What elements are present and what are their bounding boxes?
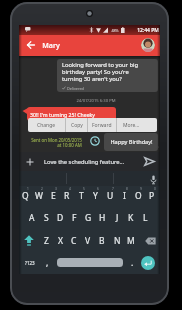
staticText: Copy — [71, 122, 83, 129]
staticText: 1 — [27, 187, 29, 191]
staticText: Forward — [92, 122, 112, 129]
staticText: L — [143, 212, 148, 224]
button[interactable] — [27, 107, 116, 121]
staticText: 4 — [69, 187, 71, 191]
button[interactable]: . — [125, 256, 139, 269]
button[interactable]: , — [40, 256, 54, 269]
button[interactable] — [146, 172, 160, 187]
button[interactable]: C — [67, 234, 81, 247]
button[interactable]: N — [110, 234, 124, 247]
staticText: K — [128, 212, 134, 224]
staticText: F — [72, 212, 77, 224]
button[interactable] — [24, 38, 38, 52]
staticText: 9 — [140, 187, 142, 191]
staticText: S — [44, 212, 49, 224]
staticText: U — [107, 190, 114, 202]
button[interactable]: Y — [88, 189, 102, 202]
staticText: C — [71, 235, 77, 247]
staticText: Q — [22, 190, 29, 202]
staticText: at 10:00 AM — [57, 142, 82, 148]
button[interactable]: H — [95, 211, 109, 224]
staticText: Delivered — [67, 86, 84, 91]
button[interactable] — [23, 155, 37, 169]
staticText: X — [58, 235, 63, 247]
staticText: 2 — [41, 187, 43, 191]
button[interactable] — [141, 154, 158, 169]
staticText: 12:44 PM — [137, 27, 159, 34]
staticText: E — [51, 190, 56, 202]
button[interactable] — [143, 234, 158, 247]
button[interactable]: L — [138, 211, 152, 224]
staticText: B — [99, 235, 105, 247]
button[interactable]: Love the scheduling feature... — [44, 152, 139, 171]
staticText: Change — [37, 122, 56, 129]
button[interactable]: M — [124, 234, 138, 247]
button[interactable]: R — [60, 189, 74, 202]
button[interactable]: X — [53, 234, 67, 247]
button[interactable] — [104, 133, 158, 151]
button[interactable]: J — [110, 211, 124, 224]
button[interactable]: Z — [39, 234, 53, 247]
button[interactable] — [141, 256, 155, 270]
button[interactable] — [141, 38, 155, 52]
staticText: 5 — [83, 187, 85, 191]
button[interactable]: Forward — [87, 118, 116, 132]
staticText: 48% — [111, 28, 119, 33]
button[interactable]: E — [46, 189, 60, 202]
button[interactable]: D — [53, 211, 67, 224]
staticText: 30!! I'm turning 25! Cheeky — [30, 111, 95, 118]
button[interactable]: S — [39, 211, 53, 224]
staticText: 6 — [97, 187, 99, 191]
button[interactable]: B — [95, 234, 109, 247]
staticText: W — [35, 190, 43, 202]
staticText: ?123 — [25, 260, 35, 266]
staticText: V — [85, 235, 91, 247]
staticText: T — [79, 190, 84, 202]
staticText: M — [127, 235, 135, 247]
button[interactable]: Copy — [65, 118, 88, 132]
staticText: Love the scheduling feature... — [44, 158, 125, 166]
staticText: 7 — [112, 187, 114, 191]
staticText: N — [114, 235, 121, 247]
button[interactable]: F — [67, 211, 81, 224]
staticText: D — [57, 212, 64, 224]
button[interactable]: K — [124, 211, 138, 224]
staticText: Z — [44, 235, 49, 247]
button[interactable]: I — [117, 189, 131, 202]
staticText: More... — [123, 122, 140, 129]
staticText: Happy Birthday! — [110, 138, 153, 146]
staticText: H — [99, 212, 106, 224]
staticText: 0 — [154, 187, 156, 191]
button[interactable]: U — [103, 189, 117, 202]
button[interactable]: O — [131, 189, 145, 202]
staticText: Mary — [42, 40, 60, 50]
button[interactable] — [57, 258, 123, 267]
button[interactable]: T — [74, 189, 88, 202]
staticText: Y — [93, 190, 98, 202]
button[interactable]: V — [81, 234, 95, 247]
staticText: J — [116, 212, 119, 224]
button[interactable]: G — [81, 211, 95, 224]
button[interactable]: ?123 — [21, 256, 38, 269]
staticText: O — [135, 190, 142, 202]
staticText: . — [131, 257, 134, 269]
staticText: Sent on Mon 20/05/2015 — [31, 137, 82, 143]
button[interactable]: More... — [116, 118, 147, 132]
staticText: 3 — [55, 187, 57, 191]
staticText: A — [29, 212, 35, 224]
button[interactable]: W — [32, 189, 46, 202]
button[interactable]: P — [145, 189, 159, 202]
staticText: P — [149, 190, 155, 202]
button[interactable] — [21, 234, 37, 247]
button[interactable] — [57, 59, 158, 92]
staticText: 8 — [126, 187, 128, 191]
staticText: R — [64, 190, 70, 202]
staticText: 24/07/2015 6:30 PM — [76, 98, 116, 104]
staticText: I — [123, 190, 126, 202]
staticText: , — [46, 257, 49, 269]
button[interactable]: A — [25, 211, 39, 224]
button[interactable]: Change — [28, 118, 65, 132]
staticText: Looking forward to your big birthday par… — [62, 61, 139, 83]
staticText: G — [85, 212, 92, 224]
button[interactable]: Q — [19, 189, 32, 202]
